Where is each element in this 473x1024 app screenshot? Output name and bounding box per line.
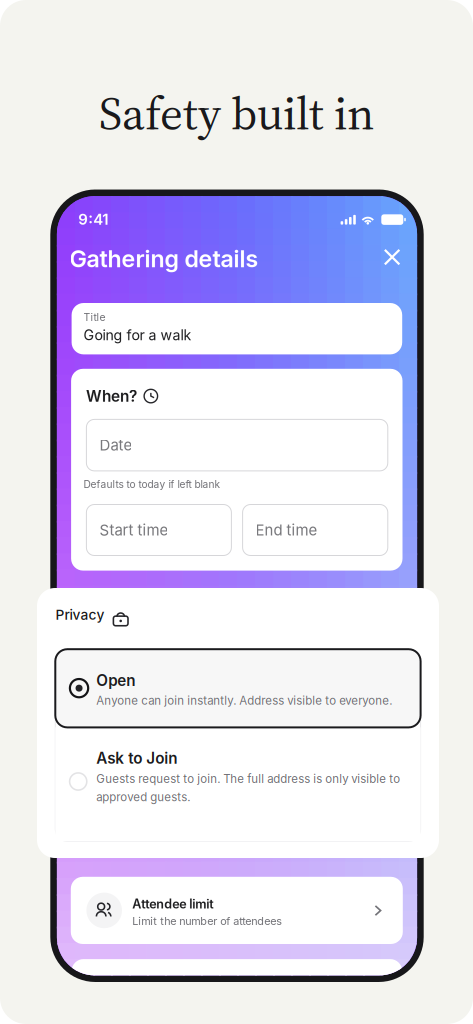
staticText: 9:41 [78,210,108,228]
staticText: Limit the number of attendees [132,914,282,928]
staticText: Ask to Join [96,749,177,767]
staticText: Date [99,436,132,454]
staticText: Title [84,311,106,324]
staticText: Gathering details [69,245,258,273]
button[interactable]: Start time [86,504,231,555]
button[interactable]: Ask to Join [55,727,421,841]
staticText: Defaults to today if left blank [83,478,220,491]
staticText: End time [256,521,318,539]
staticText: Start time [99,521,168,539]
button[interactable]: Close [372,238,412,276]
button[interactable]: End time [243,504,388,555]
button[interactable]: Title [72,303,402,354]
staticText: Going for a walk [84,327,192,344]
staticText: Anyone can join instantly. Address visib… [96,694,392,707]
staticText: When? [86,387,137,405]
button[interactable]: Open [55,649,421,727]
staticText: Attendee limit [132,896,213,911]
staticText: Privacy [55,606,104,623]
staticText: Guests request to join. The full address… [96,772,400,786]
staticText: Safety built in [99,81,374,145]
button[interactable]: Date [86,419,388,471]
staticText: approved guests. [96,790,190,804]
staticText: Open [96,671,135,690]
button[interactable]: Attendee limit [71,877,403,944]
